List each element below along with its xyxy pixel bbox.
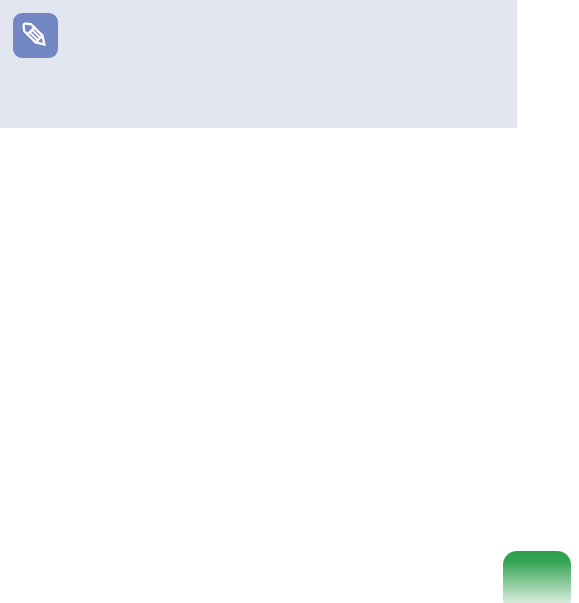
button[interactable] (503, 551, 571, 603)
button[interactable]: Edit (13, 13, 58, 58)
